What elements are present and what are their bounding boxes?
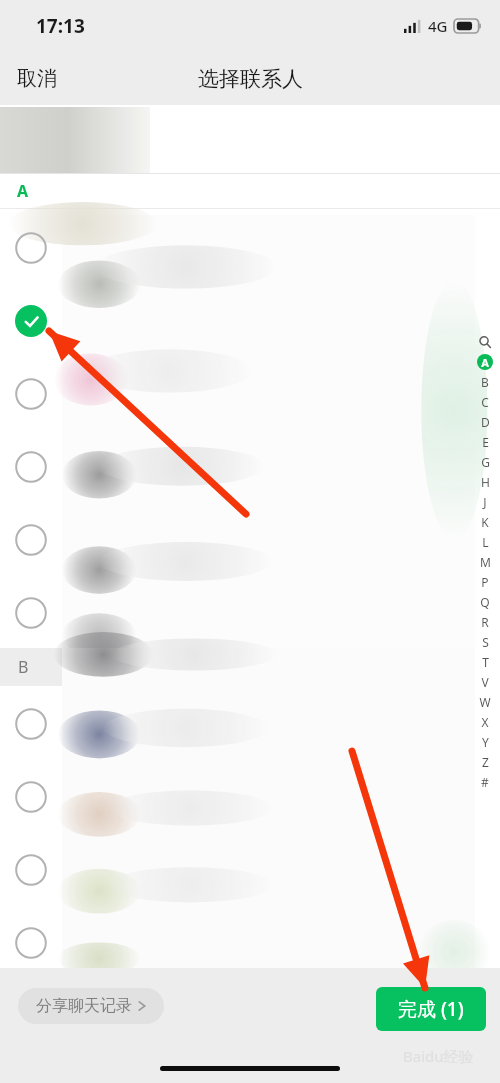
staticText: Q xyxy=(480,594,490,610)
staticText: M xyxy=(480,554,491,570)
button[interactable]: S xyxy=(474,632,496,652)
button[interactable]: H xyxy=(474,472,496,492)
staticText: E xyxy=(482,434,489,450)
button[interactable]: K xyxy=(474,512,496,532)
button[interactable]: Z xyxy=(474,752,496,772)
button[interactable]: Select contact xyxy=(0,358,62,430)
staticText: T xyxy=(482,654,489,670)
staticText: X xyxy=(481,714,489,730)
staticText: A xyxy=(481,355,489,370)
button[interactable]: V xyxy=(474,672,496,692)
button[interactable]: 分享聊天记录 xyxy=(18,988,164,1024)
staticText: V xyxy=(481,674,489,690)
button[interactable]: Q xyxy=(474,592,496,612)
button[interactable]: Selected xyxy=(0,285,62,357)
staticText: C xyxy=(481,394,489,410)
button[interactable]: X xyxy=(474,712,496,732)
staticText: A xyxy=(17,180,29,202)
button[interactable]: M xyxy=(474,552,496,572)
staticText: D xyxy=(481,414,490,430)
staticText: Baidu经验 xyxy=(403,1046,474,1066)
button[interactable]: 取消 xyxy=(0,58,71,99)
button[interactable]: B xyxy=(474,372,496,392)
staticText: R xyxy=(481,614,489,630)
button[interactable]: # xyxy=(474,772,496,792)
button[interactable]: Select contact xyxy=(0,504,62,576)
button[interactable]: R xyxy=(474,612,496,632)
button[interactable]: 完成 (1) xyxy=(376,987,486,1031)
staticText: L xyxy=(482,534,489,550)
button[interactable]: J xyxy=(474,492,496,512)
button[interactable]: W xyxy=(474,692,496,712)
button[interactable]: A xyxy=(474,352,496,372)
button[interactable]: T xyxy=(474,652,496,672)
staticText: 选择联系人 xyxy=(198,66,303,92)
staticText: J xyxy=(483,494,487,510)
button[interactable]: D xyxy=(474,412,496,432)
staticText: Y xyxy=(482,734,489,750)
button[interactable]: Select contact xyxy=(0,688,62,760)
staticText: W xyxy=(479,694,491,710)
button[interactable]: Select contact xyxy=(0,761,62,833)
button[interactable]: P xyxy=(474,572,496,592)
button[interactable]: Search xyxy=(474,332,496,352)
staticText: G xyxy=(481,454,490,470)
staticText: H xyxy=(481,474,490,490)
button[interactable]: Select contact xyxy=(0,431,62,503)
button[interactable]: Select contact xyxy=(0,834,62,906)
button[interactable]: Y xyxy=(474,732,496,752)
staticText: 分享聊天记录 xyxy=(36,996,132,1016)
staticText: B xyxy=(18,656,29,678)
staticText: 取消 xyxy=(17,66,57,91)
staticText: 完成 (1) xyxy=(398,996,464,1022)
staticText: B xyxy=(481,374,489,390)
staticText: P xyxy=(481,574,489,590)
button[interactable]: C xyxy=(474,392,496,412)
button[interactable]: L xyxy=(474,532,496,552)
staticText: # xyxy=(481,774,489,790)
staticText: 17:13 xyxy=(36,13,85,39)
button[interactable]: E xyxy=(474,432,496,452)
staticText: K xyxy=(481,514,489,530)
button[interactable]: G xyxy=(474,452,496,472)
button[interactable]: Select contact xyxy=(0,577,62,649)
staticText: Z xyxy=(482,754,489,770)
staticText: 4G xyxy=(428,16,448,36)
button[interactable]: Select contact xyxy=(0,212,62,284)
staticText: S xyxy=(482,634,489,650)
button[interactable]: Select contact xyxy=(0,907,62,979)
